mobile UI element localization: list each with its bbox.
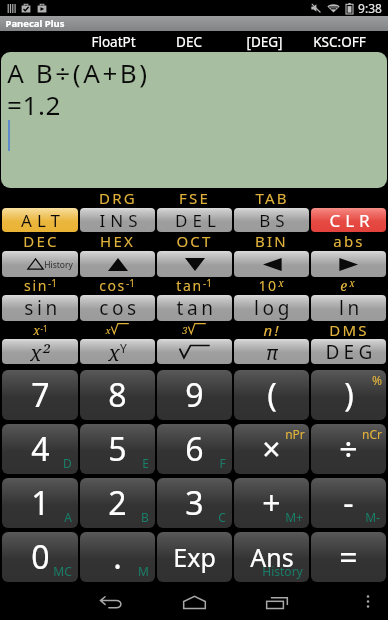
staticText: cos <box>99 276 126 294</box>
staticText: n! <box>263 320 281 338</box>
staticText: A <box>64 509 72 525</box>
button[interactable]: π <box>234 339 309 364</box>
button[interactable]: 5 <box>80 424 155 474</box>
button[interactable]: 1 <box>2 478 78 528</box>
staticText: π <box>266 339 278 364</box>
button[interactable]: 9 <box>157 370 232 420</box>
staticText: - <box>343 481 354 525</box>
staticText: DEL <box>175 209 221 232</box>
staticText: ln <box>339 295 363 321</box>
staticText: Panecal Plus <box>5 17 65 30</box>
button[interactable]: DEL <box>157 208 232 232</box>
button[interactable] <box>157 339 232 364</box>
button[interactable]: CLR <box>311 208 386 232</box>
staticText: M <box>138 563 149 579</box>
button[interactable]: ALT <box>2 208 78 232</box>
staticText: × <box>262 427 281 471</box>
staticText: 3 <box>182 324 188 337</box>
staticText: x² <box>30 339 50 364</box>
staticText: DEC <box>176 33 202 51</box>
button[interactable]: + <box>234 478 309 528</box>
staticText: CLR <box>329 209 375 232</box>
staticText: DEG <box>325 339 377 364</box>
staticText: TAB <box>255 188 289 207</box>
button[interactable]: BS <box>234 208 309 232</box>
button[interactable]: = <box>311 532 386 582</box>
button[interactable]: ( <box>234 370 309 420</box>
staticText: FSE <box>179 188 210 207</box>
button[interactable]: Up <box>80 251 155 277</box>
button[interactable]: 2 <box>80 478 155 528</box>
staticText: M- <box>365 509 380 525</box>
staticText: 7 <box>31 373 50 417</box>
button[interactable]: Right <box>311 251 386 277</box>
staticText: D <box>63 455 72 471</box>
staticText: HEX <box>100 231 135 250</box>
button[interactable]: - <box>311 478 386 528</box>
button[interactable]: 3 <box>157 478 232 528</box>
button[interactable]: Recents <box>247 584 307 618</box>
staticText: [DEG] <box>246 33 283 51</box>
button[interactable]: 0 <box>2 532 78 582</box>
staticText: Exp <box>173 540 216 574</box>
button[interactable]: cos <box>80 295 155 321</box>
button[interactable]: 7 <box>2 370 78 420</box>
staticText: BS <box>259 209 290 232</box>
button[interactable]: DEG <box>311 339 386 364</box>
staticText: x <box>349 276 355 290</box>
button[interactable]: sin <box>2 295 78 321</box>
button[interactable]: 8 <box>80 370 155 420</box>
button[interactable]: 4 <box>2 424 78 474</box>
staticText: History <box>262 563 303 579</box>
button[interactable]: log <box>234 295 309 321</box>
button[interactable]: tan <box>157 295 232 321</box>
staticText: DRG <box>99 188 137 207</box>
staticText: sin <box>24 295 61 321</box>
button[interactable]: x² <box>2 339 78 364</box>
button[interactable]: History <box>2 251 78 277</box>
button[interactable]: Home <box>164 584 224 618</box>
staticText: MC <box>53 563 72 579</box>
button[interactable]: . <box>80 532 155 582</box>
button[interactable]: x <box>80 339 155 364</box>
staticText: 10 <box>258 276 278 294</box>
staticText: DMS <box>329 320 369 338</box>
staticText: KSC:OFF <box>313 33 366 51</box>
staticText: 0 <box>31 535 50 579</box>
staticText: History <box>44 259 73 271</box>
staticText: ÷ <box>339 427 358 471</box>
staticText: B <box>141 509 149 525</box>
button[interactable]: More options <box>356 589 380 613</box>
staticText: =1.2 <box>7 87 61 122</box>
staticText: x <box>108 339 120 364</box>
button[interactable]: ln <box>311 295 386 321</box>
staticText: + <box>262 481 281 525</box>
button[interactable]: 6 <box>157 424 232 474</box>
button[interactable]: A B÷(A+B) <box>1 52 387 188</box>
button[interactable]: Down <box>157 251 232 277</box>
staticText: nCr <box>362 426 382 442</box>
staticText: . <box>113 535 122 579</box>
staticText: -1 <box>203 276 212 290</box>
button[interactable]: Exp <box>157 532 232 582</box>
staticText: C <box>218 509 226 525</box>
button[interactable]: Left <box>234 251 309 277</box>
staticText: 4 <box>31 427 50 471</box>
staticText: 8 <box>108 373 127 417</box>
staticText: F <box>219 455 226 471</box>
button[interactable]: × <box>234 424 309 474</box>
staticText: Y <box>120 340 127 356</box>
button[interactable]: Back <box>81 584 141 618</box>
staticText: FloatPt <box>91 33 136 51</box>
staticText: 9:38 <box>358 0 382 16</box>
staticText: x <box>278 276 284 290</box>
staticText: abs <box>333 231 365 250</box>
button[interactable]: Ans <box>234 532 309 582</box>
staticText: -1 <box>48 276 57 290</box>
button[interactable]: INS <box>80 208 155 232</box>
button[interactable]: ÷ <box>311 424 386 474</box>
button[interactable]: ) <box>311 370 386 420</box>
staticText: tan <box>176 276 203 294</box>
staticText: -1 <box>126 276 135 290</box>
staticText: e <box>340 276 349 294</box>
